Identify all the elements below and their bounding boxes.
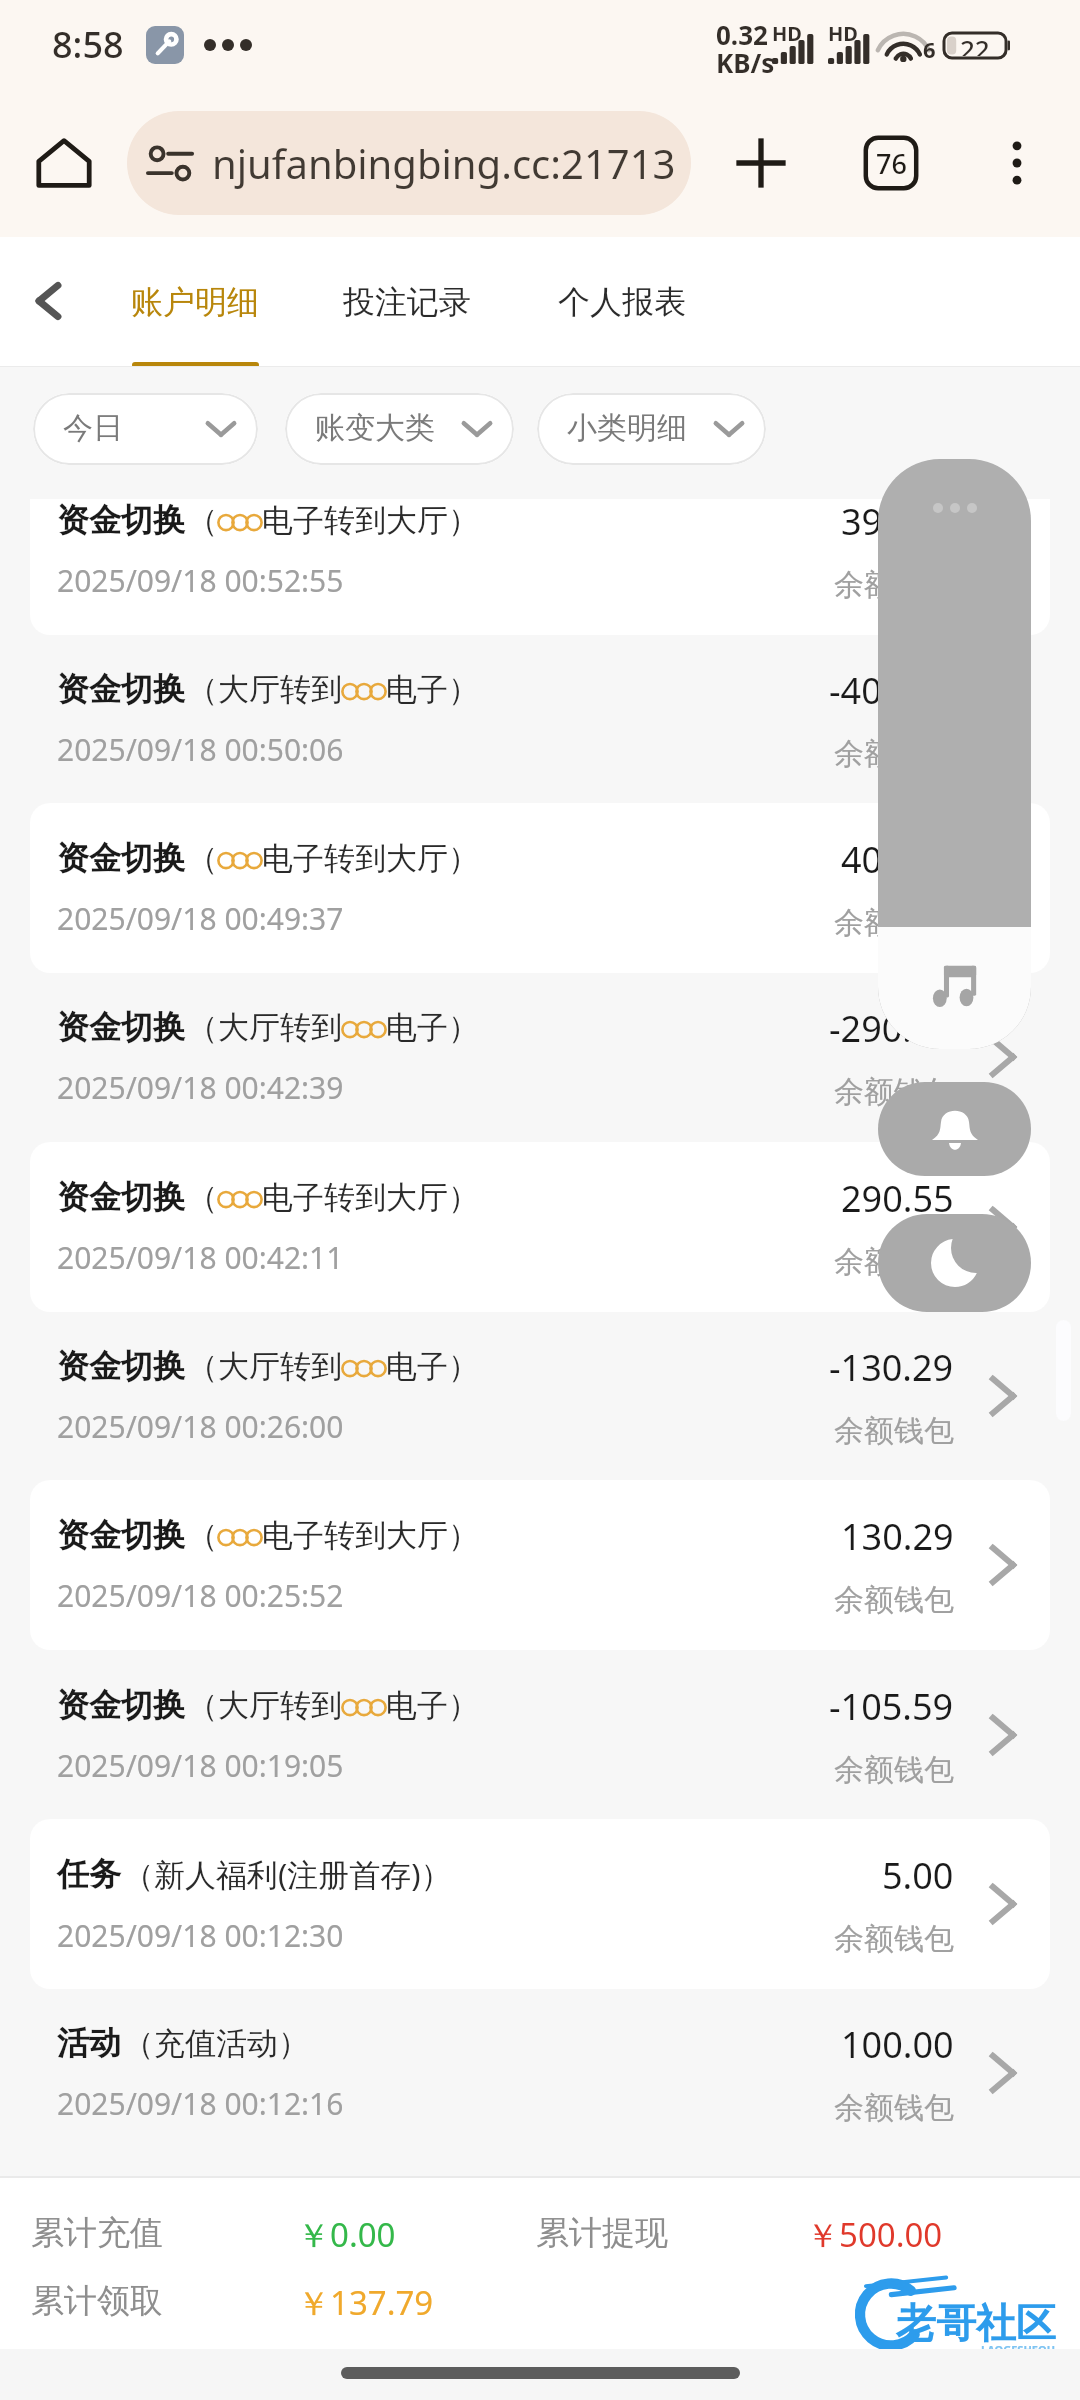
button[interactable]: Media controls [878, 459, 1031, 1049]
staticText: 账户明细 [131, 282, 259, 322]
button[interactable]: 小类明细 [537, 393, 766, 465]
staticText: 累计领取 [31, 2280, 163, 2322]
staticText: 2025/09/18 00:12:16 [57, 2083, 344, 2124]
button[interactable]: 个人报表 [527, 237, 717, 367]
staticText: -290.55 [829, 1004, 954, 1053]
staticText: 130.29 [841, 1512, 954, 1561]
staticText: 资金切换 [57, 500, 185, 540]
staticText: ￥500.00 [806, 2212, 943, 2257]
button[interactable]: 资金切换 [30, 972, 1050, 1142]
staticText: 大厅转到 [218, 1008, 342, 1047]
staticText: 余额钱包 [834, 735, 954, 773]
button[interactable]: Notifications [878, 1082, 1031, 1176]
staticText: （充值活动） [123, 2024, 309, 2063]
button[interactable]: njufanbingbing.cc:21713 [127, 111, 691, 215]
staticText: HD [772, 20, 802, 47]
staticText: ） [448, 839, 479, 878]
staticText: 电子转到大厅 [262, 839, 448, 878]
staticText: 大厅转到 [218, 670, 342, 709]
staticText: 小类明细 [567, 409, 687, 447]
staticText: ） [448, 1686, 479, 1725]
staticText: （ [187, 839, 218, 878]
staticText: 电子转到大厅 [262, 1516, 448, 1555]
staticText: ￥0.00 [297, 2212, 396, 2257]
staticText: （ [187, 670, 218, 709]
button[interactable]: Home [24, 123, 104, 203]
staticText: 余额钱包 [834, 1751, 954, 1789]
staticText: （ [187, 501, 218, 540]
staticText: 76 [876, 145, 907, 182]
staticText: 余额钱包 [834, 1581, 954, 1619]
button[interactable]: 今日 [33, 393, 258, 465]
button[interactable]: 投注记录 [312, 237, 502, 367]
button[interactable]: 资金切换 [30, 499, 1050, 635]
staticText: 投注记录 [343, 282, 471, 322]
staticText: （ [187, 1347, 218, 1386]
staticText: 大厅转到 [218, 1686, 342, 1725]
button[interactable]: 活动 [30, 1988, 1050, 2158]
staticText: 2025/09/18 00:12:30 [57, 1915, 344, 1956]
staticText: 0.32 KB/s [716, 17, 775, 81]
staticText: 资金切换 [57, 1346, 185, 1386]
staticText: ） [448, 1178, 479, 1217]
button[interactable]: 资金切换 [30, 803, 1050, 973]
button[interactable]: Tabs [851, 123, 931, 203]
staticText: 个人报表 [558, 282, 686, 322]
button[interactable]: More options [977, 123, 1057, 203]
staticText: 大厅转到 [218, 1347, 342, 1386]
staticText: ） [448, 670, 479, 709]
staticText: （ [187, 1008, 218, 1047]
button[interactable]: Night mode [878, 1214, 1031, 1312]
staticText: 余额钱包 [834, 1920, 954, 1958]
staticText: 22 [960, 31, 990, 56]
staticText: （新人福利(注册首存)） [123, 1853, 452, 1895]
button[interactable]: 账户明细 [100, 237, 290, 367]
staticText: LAOGESHEQU [981, 2342, 1056, 2357]
staticText: 2025/09/18 00:42:39 [57, 1067, 344, 1108]
staticText: 资金切换 [57, 1685, 185, 1725]
staticText: 390.55 [841, 499, 954, 546]
staticText: 2025/09/18 00:25:52 [57, 1575, 344, 1616]
staticText: （ [187, 1178, 218, 1217]
staticText: 资金切换 [57, 1007, 185, 1047]
staticText: 电子转到大厅 [262, 501, 448, 540]
staticText: 账变大类 [315, 409, 435, 447]
staticText: 电子 [386, 1686, 448, 1725]
staticText: 资金切换 [57, 669, 185, 709]
staticText: njufanbingbing.cc:21713 [212, 136, 676, 190]
button[interactable]: New tab [721, 123, 801, 203]
staticText: 余额钱包 [834, 2089, 954, 2127]
staticText: 余额钱包 [834, 1412, 954, 1450]
staticText: 8:58 [52, 20, 124, 69]
staticText: 活动 [57, 2023, 121, 2063]
button[interactable]: 资金切换 [30, 1311, 1050, 1481]
staticText: 任务 [57, 1854, 121, 1894]
staticText: 290.55 [841, 1174, 954, 1223]
button[interactable]: 资金切换 [30, 1650, 1050, 1820]
staticText: 2025/09/18 00:52:55 [57, 560, 344, 601]
staticText: ） [448, 1008, 479, 1047]
button[interactable]: 资金切换 [30, 1142, 1050, 1312]
staticText: ） [448, 1347, 479, 1386]
button[interactable]: 资金切换 [30, 1480, 1050, 1650]
staticText: 今日 [63, 409, 123, 447]
staticText: 余额钱包 [834, 1243, 954, 1281]
button[interactable]: Back [13, 266, 83, 336]
button[interactable]: 账变大类 [285, 393, 514, 465]
staticText: 6 [923, 34, 936, 64]
staticText: 5.00 [882, 1851, 954, 1900]
staticText: -400.00 [829, 666, 954, 715]
staticText: ） [448, 501, 479, 540]
staticText: 老哥社区 [896, 2298, 1056, 2348]
staticText: 400.00 [841, 835, 954, 884]
staticText: 2025/09/18 00:19:05 [57, 1745, 344, 1786]
staticText: 余额钱包 [834, 566, 954, 604]
button[interactable]: 任务 [30, 1819, 1050, 1989]
staticText: ￥137.79 [297, 2280, 434, 2325]
staticText: 电子 [386, 1008, 448, 1047]
staticText: -130.29 [829, 1343, 954, 1392]
staticText: 2025/09/18 00:50:06 [57, 729, 344, 770]
staticText: （ [187, 1516, 218, 1555]
button[interactable]: 资金切换 [30, 634, 1050, 804]
staticText: （ [187, 1686, 218, 1725]
